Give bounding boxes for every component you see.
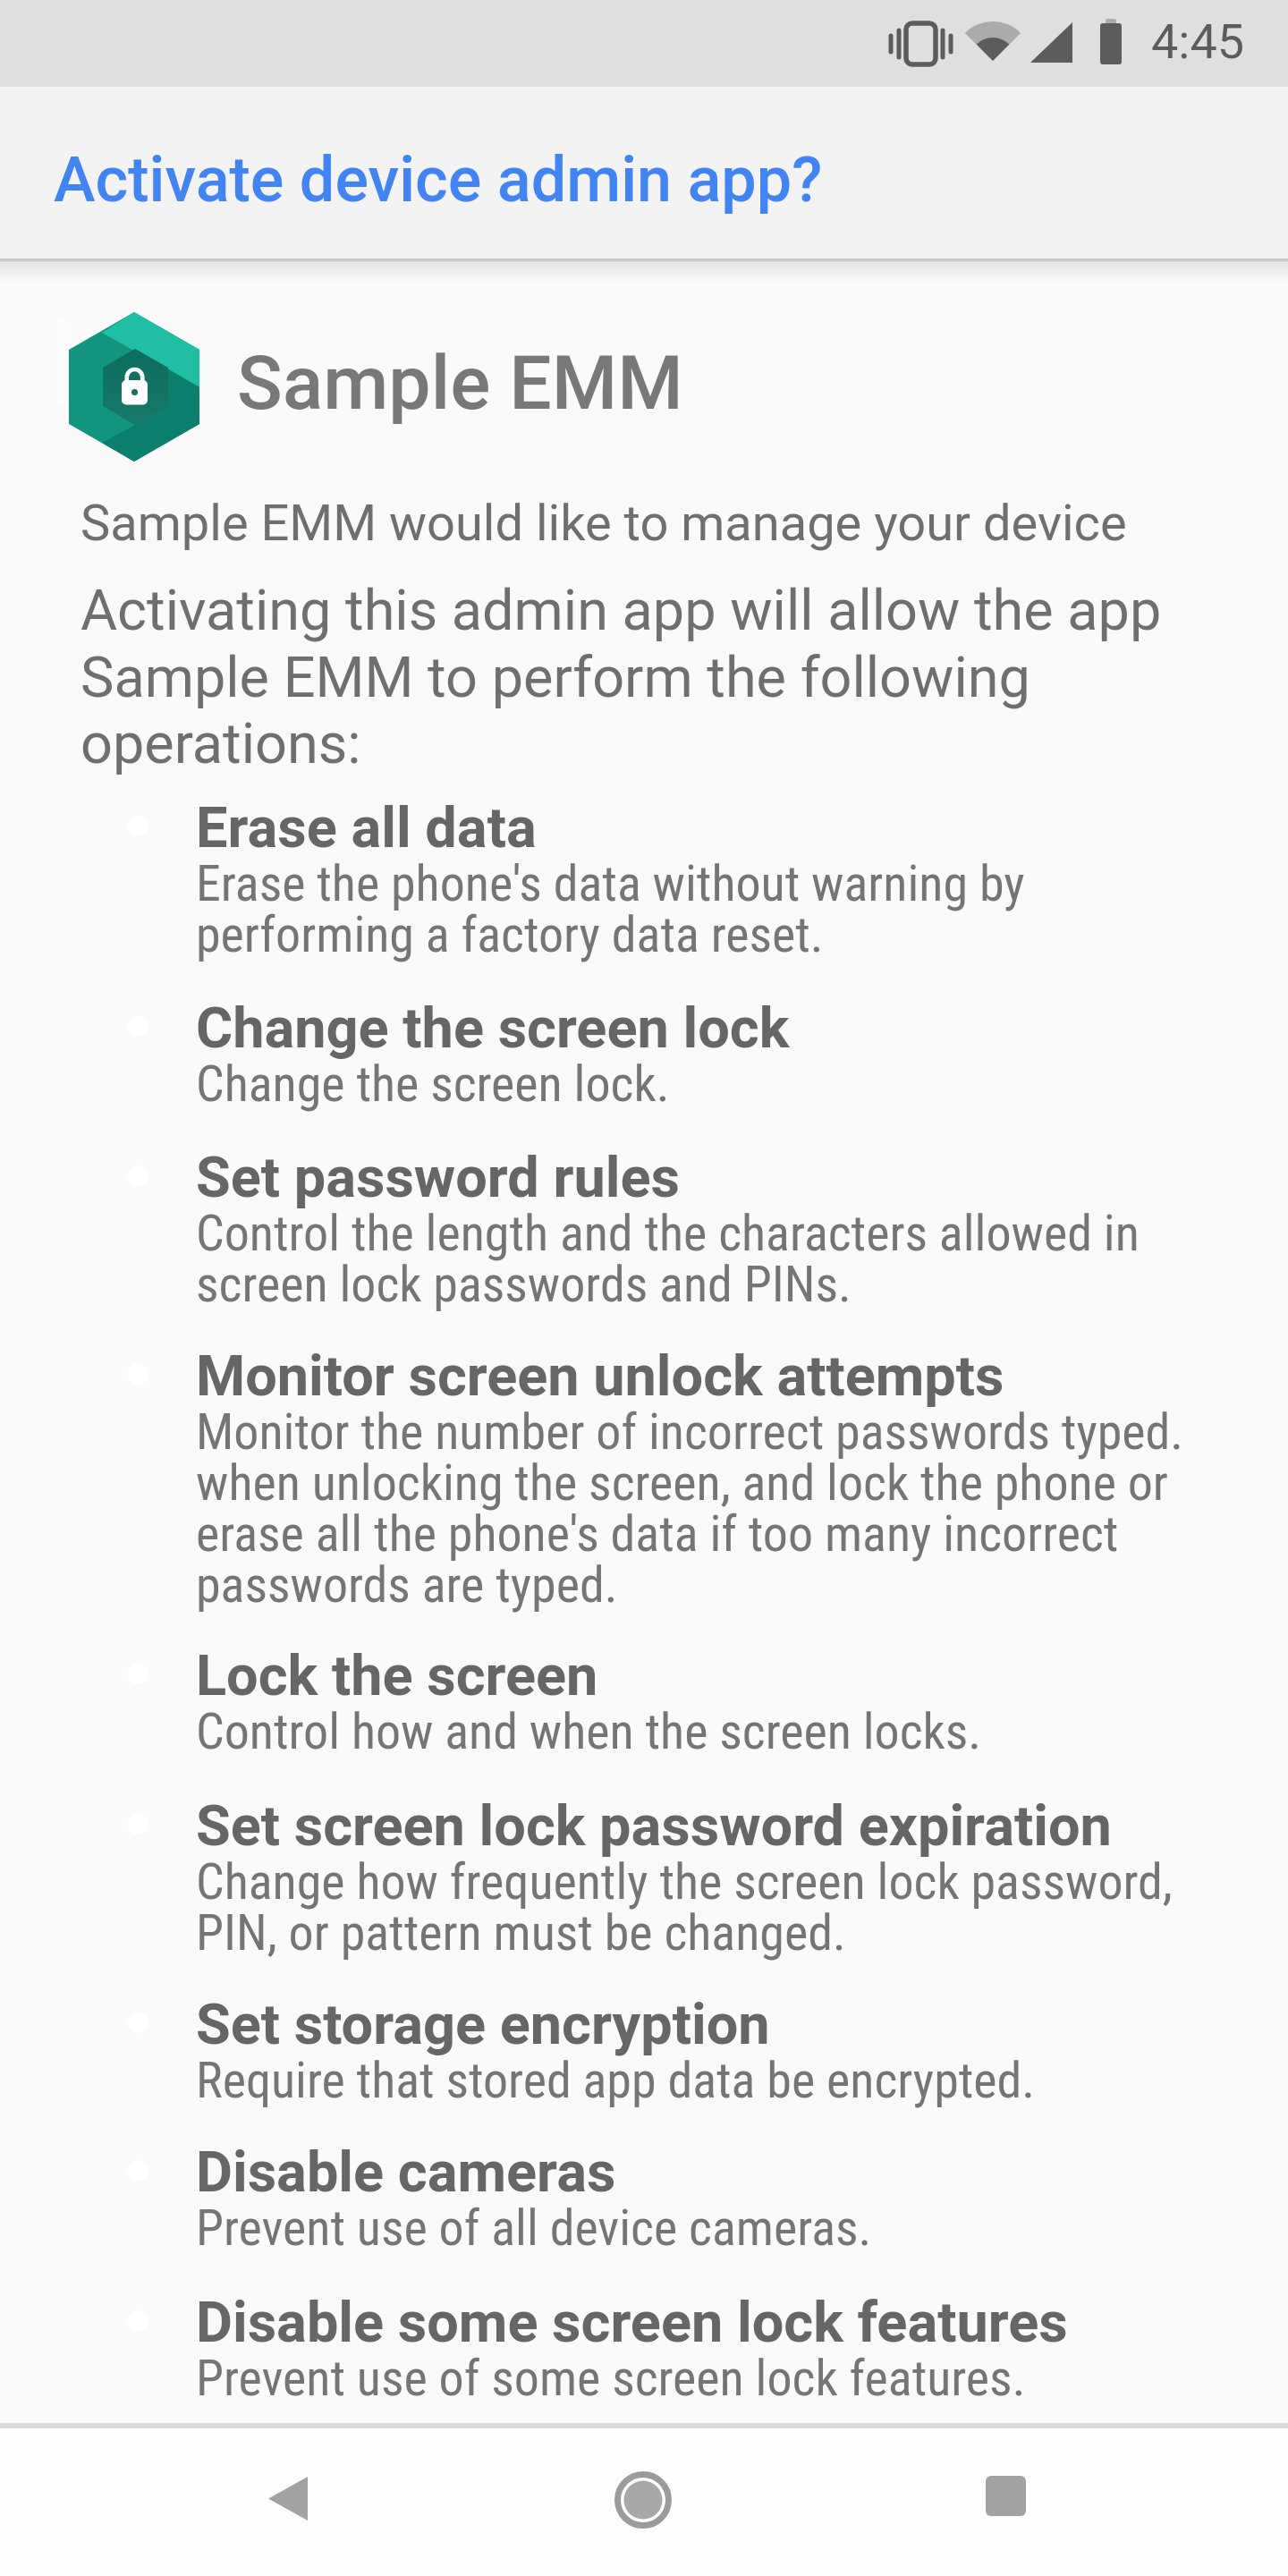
staticText: Monitor screen unlock attempts <box>196 1343 1004 1410</box>
staticText: Lock the screen <box>196 1643 598 1709</box>
staticText: Control how and when the screen locks. <box>196 1702 982 1761</box>
staticText: Sample EMM <box>237 339 683 427</box>
staticText: Change the screen lock <box>196 996 790 1062</box>
staticText: Activating this admin app will allow the… <box>80 578 1162 776</box>
staticText: 4:45 <box>1151 13 1245 70</box>
staticText: Control the length and the characters al… <box>196 1204 1140 1314</box>
staticText: Change how frequently the screen lock pa… <box>196 1852 1173 1962</box>
staticText: Prevent use of some screen lock features… <box>196 2349 1026 2408</box>
staticText: Disable some screen lock features <box>196 2290 1068 2356</box>
staticText: Sample EMM would like to manage your dev… <box>80 494 1127 553</box>
staticText: Erase the phone's data without warning b… <box>196 854 1025 964</box>
button[interactable] <box>572 2437 716 2567</box>
staticText: Activate device admin app? <box>54 143 823 216</box>
staticText: Set screen lock password expiration <box>196 1793 1112 1860</box>
staticText: Change the screen lock. <box>196 1055 670 1114</box>
button[interactable] <box>930 2437 1073 2567</box>
staticText: Prevent use of all device cameras. <box>196 2199 872 2258</box>
staticText: Monitor the number of incorrect password… <box>196 1402 1184 1614</box>
button[interactable] <box>215 2437 358 2567</box>
staticText: Erase all data <box>196 795 537 861</box>
staticText: Require that stored app data be encrypte… <box>196 2051 1036 2110</box>
staticText: Set storage encryption <box>196 1992 770 2058</box>
staticText: Disable cameras <box>196 2140 616 2206</box>
staticText: Set password rules <box>196 1145 680 1211</box>
